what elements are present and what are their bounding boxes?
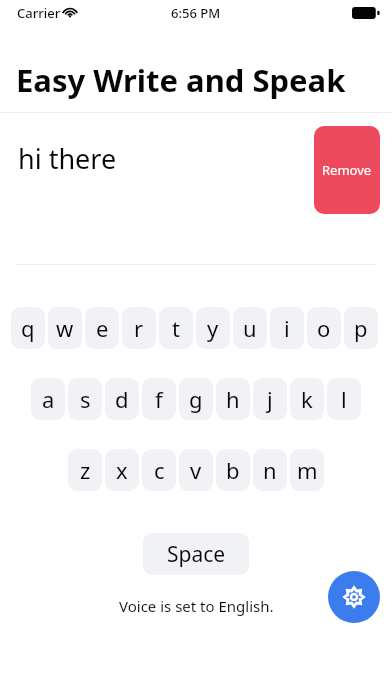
staticText: j xyxy=(267,384,273,414)
button[interactable]: Remove xyxy=(314,126,380,214)
button[interactable]: j xyxy=(253,378,287,420)
button[interactable]: a xyxy=(31,378,65,420)
button[interactable]: d xyxy=(105,378,139,420)
button[interactable]: m xyxy=(290,449,324,491)
button[interactable]: Space xyxy=(143,533,249,575)
button[interactable]: Easy Write and Speak xyxy=(16,59,346,101)
staticText: l xyxy=(341,384,347,414)
staticText: i xyxy=(284,313,290,343)
staticText: v xyxy=(190,455,202,485)
staticText: Space xyxy=(167,540,226,569)
staticText: n xyxy=(263,455,277,485)
button[interactable]: g xyxy=(179,378,213,420)
staticText: u xyxy=(243,313,257,343)
button[interactable]: w xyxy=(48,307,82,349)
staticText: e xyxy=(96,313,109,343)
button[interactable]: n xyxy=(253,449,287,491)
button[interactable]: v xyxy=(179,449,213,491)
button[interactable]: q xyxy=(11,307,45,349)
staticText: s xyxy=(80,384,91,414)
button[interactable]: h xyxy=(216,378,250,420)
button[interactable]: e xyxy=(85,307,119,349)
staticText: c xyxy=(154,455,165,485)
button[interactable]: Settings xyxy=(328,571,380,623)
staticText: m xyxy=(297,455,318,485)
staticText: Voice is set to English. xyxy=(119,596,274,616)
staticText: w xyxy=(56,313,74,343)
staticText: 6:56 PM xyxy=(171,4,221,22)
button[interactable]: i xyxy=(270,307,304,349)
button[interactable]: x xyxy=(105,449,139,491)
staticText: p xyxy=(354,313,368,343)
button[interactable]: o xyxy=(307,307,341,349)
staticText: Remove xyxy=(322,161,372,179)
button[interactable]: r xyxy=(122,307,156,349)
staticText: t xyxy=(172,313,180,343)
button[interactable]: t xyxy=(159,307,193,349)
button[interactable]: f xyxy=(142,378,176,420)
staticText: y xyxy=(207,313,219,343)
staticText: h xyxy=(226,384,240,414)
button[interactable]: k xyxy=(290,378,324,420)
staticText: hi there xyxy=(18,140,117,177)
staticText: d xyxy=(115,384,129,414)
staticText: f xyxy=(155,384,163,414)
staticText: k xyxy=(301,384,313,414)
button[interactable]: l xyxy=(327,378,361,420)
staticText: b xyxy=(226,455,240,485)
button[interactable]: u xyxy=(233,307,267,349)
staticText: o xyxy=(317,313,331,343)
button[interactable]: b xyxy=(216,449,250,491)
staticText: z xyxy=(80,455,91,485)
staticText: a xyxy=(42,384,55,414)
staticText: Carrier xyxy=(17,4,61,22)
staticText: r xyxy=(134,313,144,343)
button[interactable]: c xyxy=(142,449,176,491)
staticText: g xyxy=(189,384,203,414)
button[interactable]: z xyxy=(68,449,102,491)
button[interactable]: p xyxy=(344,307,378,349)
staticText: x xyxy=(116,455,128,485)
button[interactable]: s xyxy=(68,378,102,420)
staticText: q xyxy=(21,313,35,343)
button[interactable]: y xyxy=(196,307,230,349)
